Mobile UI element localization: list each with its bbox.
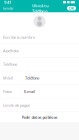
button[interactable]: Pedir datos públicos: [0, 112, 79, 122]
staticText: Móvil: [3, 75, 13, 80]
staticText: Ubicá tu Teléfono: [32, 3, 49, 13]
staticText: Apellidos: [3, 48, 19, 53]
button[interactable]: Escribe tu nombre: [0, 30, 79, 44]
staticText: OK: [68, 6, 74, 11]
staticText: Teléfono: [25, 75, 39, 80]
staticText: Escribe tu nombre: [3, 34, 35, 40]
button[interactable]: Apellidos: [0, 44, 79, 58]
button[interactable]: Emitir: [0, 5, 17, 12]
staticText: 9:41: [4, 0, 11, 5]
staticText: Emitir: [3, 6, 14, 11]
staticText: Límite de pagos: [3, 102, 30, 108]
staticText: Teléfono: [3, 62, 17, 67]
button[interactable]: Móvil: [0, 71, 79, 85]
button[interactable]: Teléfono: [0, 58, 79, 71]
button[interactable]: OK: [64, 6, 79, 10]
button[interactable]: Fotos: [0, 85, 79, 98]
button[interactable]: Límite de pagos: [0, 98, 79, 112]
staticText: Pedir datos públicos: [21, 114, 57, 120]
staticText: Fotos: [3, 89, 12, 94]
staticText: E-mail: [24, 89, 35, 94]
